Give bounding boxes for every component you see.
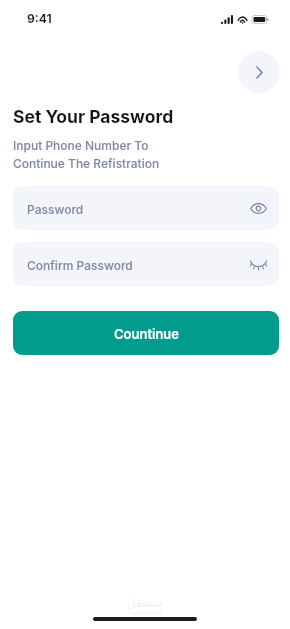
button[interactable]: Password	[13, 186, 279, 230]
button[interactable]: Countinue	[13, 311, 279, 355]
staticText: مستقل	[127, 596, 163, 610]
staticText: Countinue	[114, 326, 179, 342]
staticText: Password	[27, 202, 84, 217]
button[interactable]: Hide password	[247, 253, 269, 275]
staticText: Set Your Password	[13, 106, 174, 127]
staticText: mostaql.com	[128, 610, 162, 617]
staticText: Confirm Password	[27, 258, 133, 273]
button[interactable]: Show password	[247, 197, 269, 219]
staticText: Input Phone Number To Continue The Refis…	[13, 138, 160, 171]
button[interactable]: Confirm Password	[13, 242, 279, 286]
staticText: 9:41	[27, 11, 52, 26]
button[interactable]: Next	[238, 51, 280, 93]
